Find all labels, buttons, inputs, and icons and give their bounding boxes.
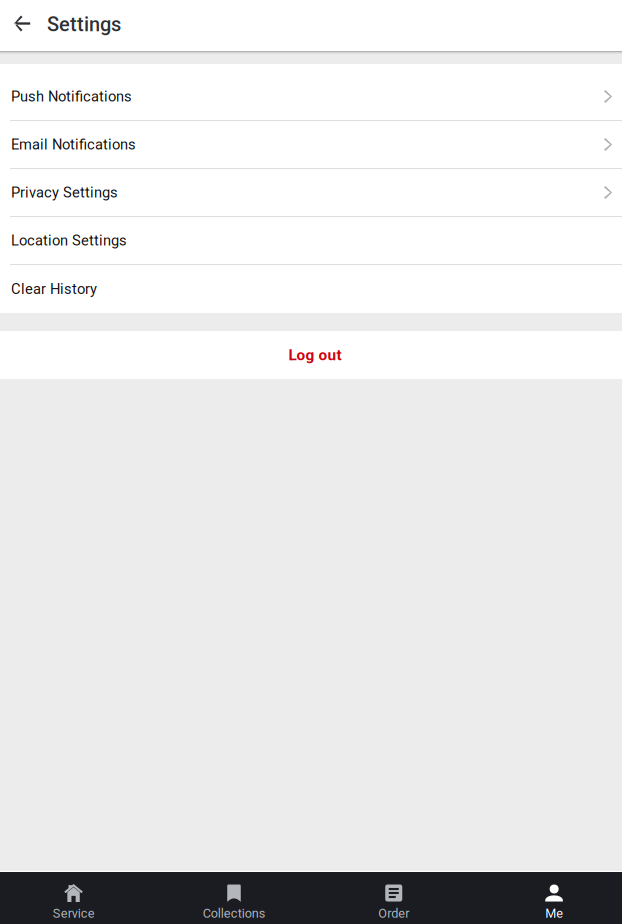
staticText: Collections <box>203 906 266 921</box>
button[interactable]: Log out <box>0 331 622 379</box>
staticText: Service <box>53 906 95 921</box>
button[interactable]: Location Settings <box>0 217 622 265</box>
staticText: Log out <box>288 346 341 364</box>
staticText: Settings <box>47 13 121 36</box>
button[interactable]: Order <box>311 872 466 924</box>
staticText: Email Notifications <box>11 136 136 153</box>
staticText: Push Notifications <box>11 88 132 105</box>
button[interactable]: Email Notifications <box>0 121 622 169</box>
button[interactable]: Clear History <box>0 265 622 313</box>
button[interactable]: Back <box>0 0 47 51</box>
button[interactable]: Privacy Settings <box>0 169 622 217</box>
staticText: Order <box>378 906 409 921</box>
button[interactable]: Service <box>0 872 155 924</box>
button[interactable]: Push Notifications <box>0 73 622 121</box>
button[interactable]: Collections <box>155 872 311 924</box>
staticText: Privacy Settings <box>11 184 118 201</box>
staticText: Clear History <box>11 280 97 298</box>
staticText: Location Settings <box>11 232 127 249</box>
button[interactable]: Me <box>466 872 622 924</box>
staticText: Me <box>545 906 563 921</box>
